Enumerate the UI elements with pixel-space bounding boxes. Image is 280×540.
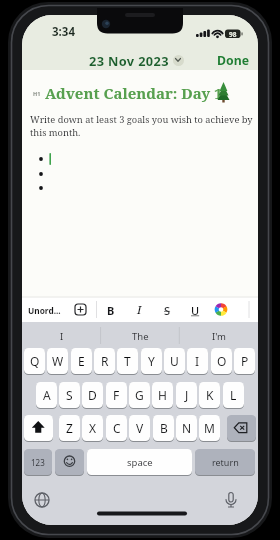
button[interactable]: R xyxy=(94,348,115,374)
staticText: Done xyxy=(217,52,250,69)
staticText: J xyxy=(185,387,189,403)
button[interactable]: A xyxy=(36,382,57,408)
staticText: E xyxy=(78,353,85,369)
staticText: I'm xyxy=(212,330,226,343)
staticText: S xyxy=(164,303,171,318)
button[interactable]: U xyxy=(187,300,203,320)
button[interactable] xyxy=(55,449,84,475)
staticText: Z xyxy=(66,420,73,436)
button[interactable] xyxy=(74,303,87,316)
button[interactable]: M xyxy=(199,415,220,441)
staticText: O xyxy=(217,353,227,369)
button[interactable] xyxy=(101,322,179,349)
button[interactable]: E xyxy=(71,348,92,374)
button[interactable]: I xyxy=(131,300,147,320)
button[interactable]: B xyxy=(103,300,119,320)
button[interactable]: N xyxy=(176,415,197,441)
staticText: H1 xyxy=(33,90,41,97)
staticText: Advent Calendar: Day 1 xyxy=(45,83,223,103)
staticText: Y xyxy=(148,353,155,369)
staticText: K xyxy=(206,387,214,403)
staticText: F xyxy=(113,387,120,403)
staticText: Unord... xyxy=(28,305,61,316)
staticText: space xyxy=(127,456,153,469)
staticText: W xyxy=(52,353,64,369)
staticText: C xyxy=(113,420,121,436)
button[interactable]: H xyxy=(152,382,173,408)
staticText: G xyxy=(135,387,144,403)
button[interactable]: P xyxy=(234,348,255,374)
staticText: B xyxy=(160,420,168,436)
staticText: S xyxy=(66,387,73,403)
button[interactable] xyxy=(219,489,243,513)
staticText: M xyxy=(204,420,215,436)
button[interactable]: D xyxy=(82,382,103,408)
staticText: I xyxy=(137,302,142,318)
button[interactable]: O xyxy=(211,348,232,374)
button[interactable]: F xyxy=(106,382,127,408)
button[interactable]: 23 Nov 2023 xyxy=(74,50,184,70)
button[interactable]: Y xyxy=(141,348,162,374)
button[interactable]: T xyxy=(117,348,138,374)
button[interactable]: Unord... xyxy=(22,300,66,320)
button[interactable]: Z xyxy=(59,415,80,441)
staticText: return xyxy=(212,456,239,468)
button[interactable]: V xyxy=(129,415,150,441)
button[interactable]: J xyxy=(176,382,197,408)
staticText: U xyxy=(191,303,200,318)
staticText: Q xyxy=(30,353,40,369)
staticText: B xyxy=(107,303,115,318)
staticText: L xyxy=(230,387,237,403)
button[interactable]: S xyxy=(159,300,175,320)
button[interactable]: U xyxy=(164,348,185,374)
button[interactable]: C xyxy=(106,415,127,441)
staticText: Write down at least 3 goals you wish to … xyxy=(30,113,253,126)
button[interactable] xyxy=(30,489,54,513)
staticText: V xyxy=(136,420,144,436)
button[interactable]: I xyxy=(187,348,208,374)
staticText: 123 xyxy=(31,457,45,468)
staticText: H xyxy=(158,387,167,403)
button[interactable]: S xyxy=(59,382,80,408)
button[interactable]: L xyxy=(223,382,244,408)
button[interactable] xyxy=(22,322,100,349)
button[interactable]: X xyxy=(82,415,103,441)
button[interactable]: W xyxy=(47,348,68,374)
staticText: D xyxy=(88,387,97,403)
button[interactable]: Done xyxy=(203,50,258,70)
button[interactable]: K xyxy=(199,382,220,408)
staticText: U xyxy=(170,353,179,369)
staticText: this month. xyxy=(30,126,81,139)
staticText: 98 xyxy=(229,30,237,39)
staticText: I xyxy=(195,353,200,369)
button[interactable]: 123 xyxy=(24,449,52,475)
button[interactable] xyxy=(180,322,258,349)
staticText: N xyxy=(182,420,192,436)
button[interactable] xyxy=(215,304,227,316)
button[interactable]: return xyxy=(195,449,255,475)
button[interactable]: space xyxy=(87,449,192,475)
staticText: T xyxy=(124,353,131,369)
staticText: 23 Nov 2023 xyxy=(89,52,169,69)
button[interactable] xyxy=(24,415,53,441)
staticText: X xyxy=(89,420,97,436)
button[interactable]: B xyxy=(153,415,174,441)
button[interactable]: G xyxy=(129,382,150,408)
staticText: A xyxy=(43,387,51,403)
button[interactable] xyxy=(227,415,256,441)
staticText: The xyxy=(132,330,149,343)
staticText: I xyxy=(60,330,64,343)
button[interactable] xyxy=(173,55,184,66)
staticText: P xyxy=(241,353,249,369)
staticText: R xyxy=(101,353,109,369)
button[interactable]: Q xyxy=(24,348,45,374)
staticText: 3:34 xyxy=(52,24,75,40)
